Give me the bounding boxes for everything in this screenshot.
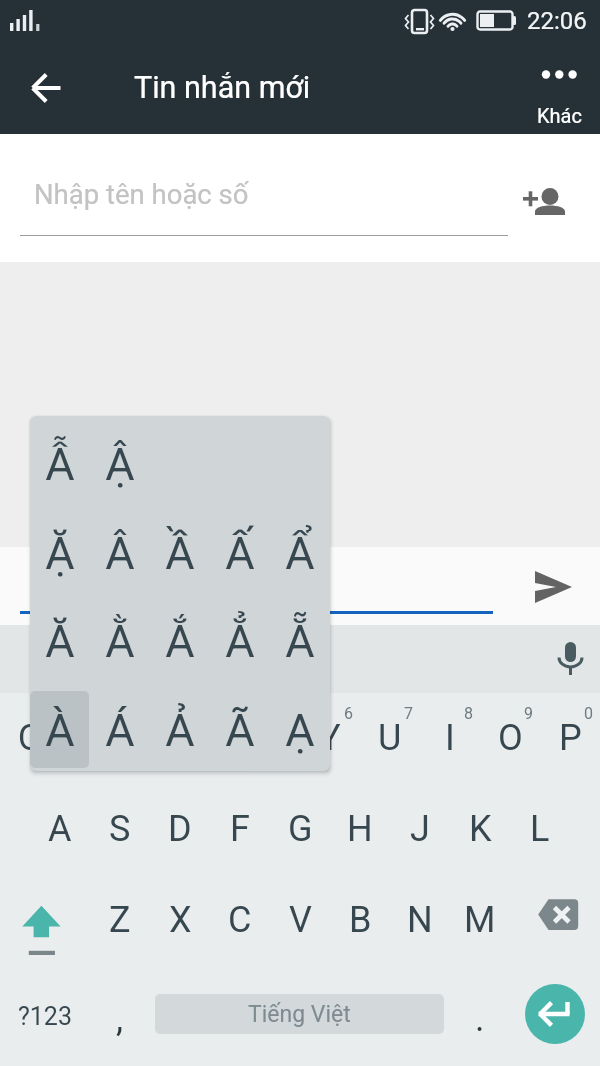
button[interactable]: F [210, 784, 270, 874]
staticText: Q [18, 717, 43, 759]
staticText: Ằ [105, 615, 135, 668]
button[interactable]: Ẩ [270, 509, 330, 597]
staticText: D [168, 808, 192, 850]
button[interactable]: Tiếng Việt [155, 994, 444, 1034]
button[interactable]: Ả [150, 686, 210, 771]
staticText: Z [109, 899, 131, 941]
button[interactable]: . [450, 966, 510, 1066]
staticText: 7 [404, 704, 413, 723]
button[interactable]: Ạ [270, 686, 330, 771]
staticText: . [475, 998, 485, 1040]
staticText: L [530, 808, 550, 850]
button[interactable]: R [180, 693, 240, 783]
button[interactable]: G [270, 784, 330, 874]
button[interactable]: Ằ [90, 597, 150, 685]
button[interactable]: Á [90, 686, 150, 771]
staticText: Ã [225, 704, 255, 757]
button[interactable]: M [450, 875, 510, 965]
button[interactable]: Ẳ [210, 597, 270, 685]
staticText: Ẫ [45, 438, 75, 491]
staticText: 9 [524, 704, 533, 723]
button[interactable]: N [390, 875, 450, 965]
button[interactable]: Ầ [150, 509, 210, 597]
button[interactable]: Caps lock [0, 875, 90, 965]
staticText: À [45, 704, 75, 757]
button[interactable]: T [240, 693, 300, 783]
button[interactable]: E [120, 693, 180, 783]
button[interactable]: Add contact [514, 172, 572, 230]
button[interactable]: Voice input [540, 629, 600, 689]
staticText: U [378, 717, 402, 759]
button[interactable]: J [390, 784, 450, 874]
staticText: N [407, 899, 433, 941]
button[interactable]: V [270, 875, 330, 965]
button[interactable]: More options [522, 50, 600, 134]
button[interactable]: Ậ [90, 420, 150, 508]
button[interactable]: Ẫ [30, 420, 90, 508]
staticText: C [228, 899, 252, 941]
staticText: K [469, 808, 492, 850]
button[interactable]: K [450, 784, 510, 874]
staticText: ?123 [18, 1002, 72, 1031]
button[interactable]: Enter [525, 984, 585, 1044]
staticText: Ắ [165, 615, 195, 668]
button[interactable]: D [150, 784, 210, 874]
button[interactable]: Ắ [150, 597, 210, 685]
button[interactable]: Ấ [210, 509, 270, 597]
staticText: A [48, 808, 72, 850]
staticText: Ẳ [225, 615, 255, 668]
staticText: , [116, 998, 124, 1040]
button[interactable]: P [540, 693, 600, 783]
button[interactable]: A [30, 784, 90, 874]
button[interactable]: Â [90, 509, 150, 597]
button[interactable]: Ã [210, 686, 270, 771]
button[interactable]: Q [0, 693, 60, 783]
button[interactable]: Back [18, 59, 76, 117]
button[interactable]: À [30, 686, 90, 771]
button[interactable]: H [330, 784, 390, 874]
staticText: Ẩ [285, 527, 315, 580]
button[interactable]: Send [523, 557, 583, 617]
staticText: Â [105, 527, 135, 580]
button[interactable]: Ặ [30, 509, 90, 597]
staticText: O [498, 717, 523, 759]
button[interactable]: X [150, 875, 210, 965]
button[interactable]: Z [90, 875, 150, 965]
staticText: Ạ [285, 704, 315, 757]
button[interactable]: Ă [30, 597, 90, 685]
button[interactable]: W [60, 693, 120, 783]
button[interactable]: B [330, 875, 390, 965]
button[interactable]: Y [300, 693, 360, 783]
staticText: V [289, 899, 312, 941]
button[interactable]: S [90, 784, 150, 874]
staticText: H [347, 808, 373, 850]
staticText: Á [105, 704, 135, 757]
button[interactable]: L [510, 784, 570, 874]
button[interactable]: U [360, 693, 420, 783]
staticText: Ấ [225, 527, 255, 580]
staticText: Nhập tên hoặc số [34, 178, 249, 210]
button[interactable]: ?123 [0, 966, 90, 1066]
staticText: G [288, 808, 313, 850]
staticText: 6 [344, 704, 353, 723]
staticText: Ả [165, 704, 195, 757]
button[interactable]: C [210, 875, 270, 965]
staticText: Tiếng Việt [248, 1001, 351, 1028]
button[interactable]: Backspace [510, 875, 600, 965]
staticText: Y [319, 717, 341, 759]
staticText: J [410, 808, 430, 850]
button[interactable]: I [420, 693, 480, 783]
staticText: 8 [464, 704, 473, 723]
button[interactable]: Ẵ [270, 597, 330, 685]
button[interactable]: , [90, 966, 150, 1066]
staticText: Ẵ [285, 615, 315, 668]
staticText: Ậ [105, 438, 135, 491]
button[interactable]: O [480, 693, 540, 783]
staticText: M [464, 899, 496, 941]
